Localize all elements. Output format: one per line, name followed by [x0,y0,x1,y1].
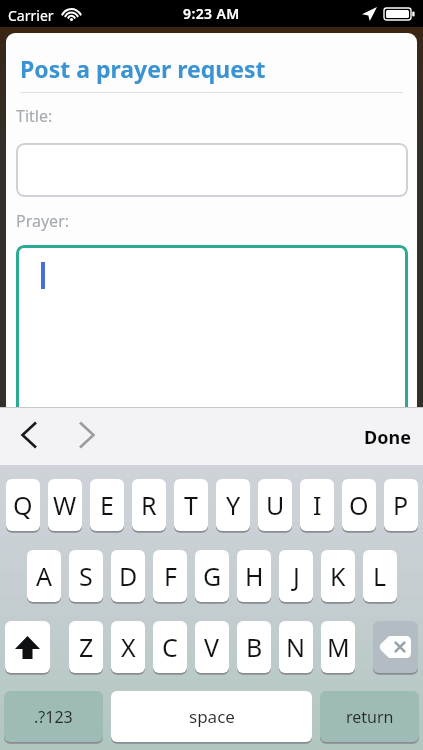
button[interactable]: S [69,550,103,602]
staticText: C [162,630,178,664]
staticText: Title: [16,105,53,127]
button[interactable]: E [90,479,124,531]
staticText: Carrier [8,6,54,25]
staticText: R [141,488,157,522]
button[interactable]: H [237,550,271,602]
button[interactable]: J [279,550,313,602]
staticText: L [373,559,387,593]
staticText: K [330,559,346,593]
staticText: .?123 [34,706,73,728]
staticText: T [184,488,198,522]
staticText: N [286,630,306,664]
button[interactable]: T [174,479,208,531]
staticText: H [245,559,264,593]
button[interactable]: G [195,550,229,602]
button[interactable]: .?123 [4,691,103,742]
staticText: space [189,705,235,728]
button[interactable]: V [195,621,229,673]
button[interactable]: A [27,550,61,602]
button[interactable]: return [320,691,419,742]
button[interactable]: R [132,479,166,531]
staticText: Post a prayer request [20,53,266,84]
button[interactable] [16,245,408,407]
button[interactable]: U [258,479,292,531]
button[interactable]: Y [216,479,250,531]
button[interactable]: K [321,550,355,602]
button[interactable]: L [363,550,397,602]
button[interactable]: M [321,621,355,673]
staticText: S [79,559,93,593]
button[interactable]: Q [6,479,40,531]
button[interactable]: Done [347,422,411,452]
staticText: D [119,559,138,593]
staticText: J [293,559,300,593]
staticText: V [204,630,220,664]
button[interactable]: D [111,550,145,602]
button[interactable]: N [279,621,313,673]
staticText: Done [364,425,411,450]
button[interactable]: Z [69,621,103,673]
button[interactable] [21,421,36,449]
button[interactable]: O [342,479,376,531]
button[interactable]: I [300,479,334,531]
staticText: return [346,706,394,728]
button[interactable]: B [237,621,271,673]
button[interactable] [5,621,50,673]
button[interactable]: F [153,550,187,602]
button[interactable] [80,421,95,449]
staticText: U [266,488,285,522]
staticText: G [203,559,222,593]
staticText: A [36,559,52,593]
staticText: Z [79,630,94,664]
button[interactable]: W [48,479,82,531]
button[interactable] [16,143,408,197]
staticText: E [100,488,114,522]
staticText: 9:23 AM [183,4,240,23]
staticText: M [327,630,350,664]
button[interactable]: P [384,479,418,531]
staticText: Y [226,488,241,522]
button[interactable] [373,621,418,673]
staticText: W [53,488,77,522]
button[interactable]: C [153,621,187,673]
staticText: P [393,488,409,522]
staticText: I [313,488,322,522]
staticText: X [121,630,136,664]
staticText: O [349,488,369,522]
staticText: Prayer: [16,210,70,232]
staticText: F [164,559,177,593]
button[interactable]: X [111,621,145,673]
staticText: B [246,630,263,664]
staticText: Q [13,488,33,522]
button[interactable]: space [111,691,312,742]
